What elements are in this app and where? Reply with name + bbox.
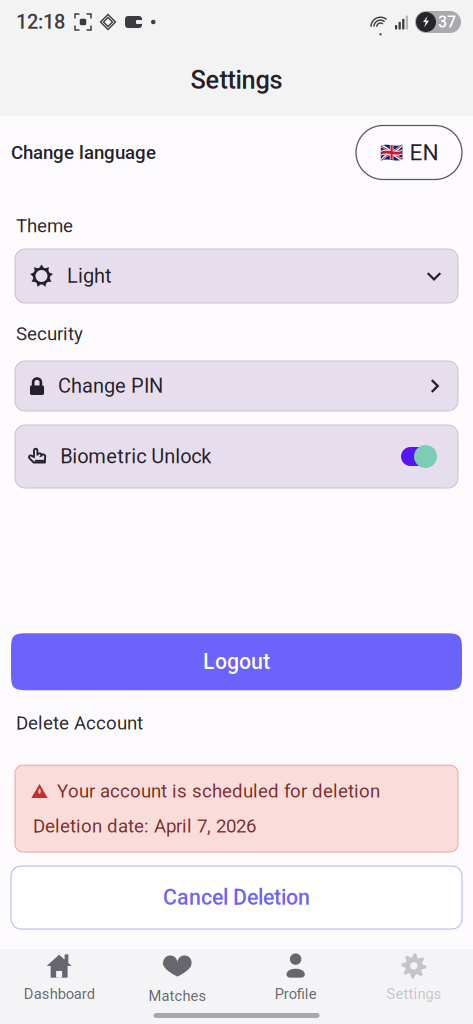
staticText: Cancel Deletion [163,885,310,910]
staticText: Matches [148,987,206,1005]
staticText: EN [409,139,438,166]
button[interactable]: Logout [11,633,462,690]
staticText: 12:18 [16,10,65,34]
staticText: Your account is scheduled for deletion [57,780,380,802]
button[interactable]: Settings [355,949,473,1007]
button[interactable]: Matches [118,949,236,1007]
button[interactable]: Biometric Unlock [15,425,458,488]
button[interactable]: Light [15,249,458,303]
staticText: Change PIN [58,374,163,398]
staticText: Security [16,323,83,345]
button[interactable]: Profile [236,949,355,1007]
button[interactable]: Dashboard [0,949,118,1007]
staticText: Logout [203,649,270,674]
staticText: Change language [11,142,156,163]
staticText: 🇬🇧 [379,142,402,163]
staticText: Settings [386,985,441,1003]
button[interactable]: Change PIN [15,361,458,411]
staticText: Theme [16,215,73,237]
button[interactable]: 🇬🇧 [356,125,462,179]
staticText: Deletion date: April 7, 2026 [33,815,256,837]
staticText: Biometric Unlock [60,445,211,468]
staticText: Settings [190,65,282,95]
staticText: Dashboard [24,985,95,1003]
staticText: Delete Account [16,712,143,734]
button[interactable]: Cancel Deletion [11,866,462,929]
staticText: Light [67,264,112,288]
staticText: 37 [438,13,456,31]
staticText: Profile [275,985,317,1003]
